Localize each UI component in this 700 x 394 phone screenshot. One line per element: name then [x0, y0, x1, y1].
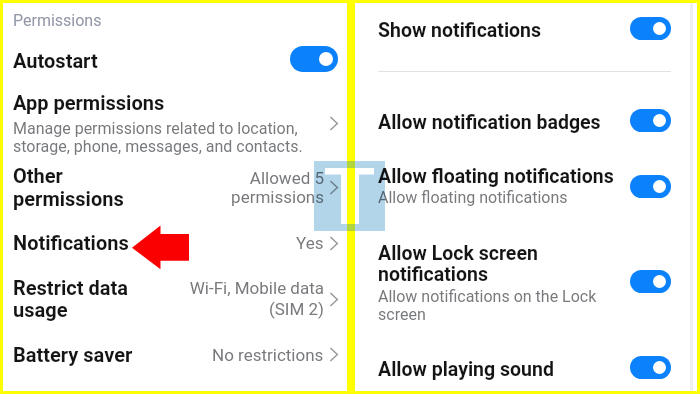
button[interactable]: Toggle, on [630, 356, 671, 379]
staticText: Allow floating notifications [378, 165, 614, 188]
button[interactable]: Toggle, on [630, 17, 671, 40]
button[interactable]: Allow floating notifications [355, 162, 697, 210]
staticText: Allow playing sound [378, 358, 630, 381]
button[interactable]: App permissions [3, 91, 347, 161]
staticText: Wi-Fi, Mobile data (SIM 2) [153, 278, 324, 319]
staticText: Notifications [13, 231, 296, 254]
button[interactable]: Allow playing sound [355, 351, 697, 387]
button[interactable]: Battery saver [3, 341, 347, 368]
staticText: Other permissions [13, 164, 163, 210]
staticText: App permissions [13, 91, 165, 114]
staticText: Manage permissions related to location, … [13, 119, 303, 156]
staticText: Allow notification badges [378, 111, 630, 134]
staticText: Allow Lock screen notifications [378, 242, 538, 285]
staticText: No restrictions [212, 345, 324, 365]
button[interactable]: Toggle, on [630, 175, 671, 198]
button[interactable]: Allow Lock screen notifications [355, 235, 697, 331]
staticText: Restrict data usage [13, 276, 153, 322]
staticText: Yes [296, 233, 324, 253]
staticText: Autostart [13, 49, 290, 72]
button[interactable]: Notifications [3, 229, 347, 256]
button[interactable]: Toggle, on [290, 46, 338, 72]
staticText: Show notifications [378, 19, 630, 42]
button[interactable]: Toggle, on [630, 270, 671, 293]
button[interactable]: Allow notification badges [355, 104, 697, 140]
button[interactable]: Toggle, on [630, 109, 671, 132]
button[interactable]: Autostart [3, 42, 347, 79]
staticText: Battery saver [13, 343, 212, 366]
staticText: Allowed 5 permissions [163, 168, 324, 207]
staticText: Permissions [13, 11, 102, 30]
staticText: Allow notifications on the Lock screen [378, 287, 597, 324]
button[interactable]: Other permissions [3, 164, 347, 216]
button[interactable]: Show notifications [355, 12, 697, 48]
staticText: Allow floating notifications [378, 188, 568, 207]
button[interactable]: Restrict data usage [3, 276, 347, 328]
